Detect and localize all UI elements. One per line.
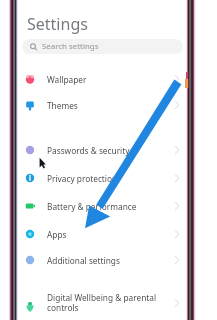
staticText: Additional settings bbox=[47, 255, 120, 266]
button[interactable]: Passwords & security bbox=[18, 140, 184, 160]
button[interactable]: Additional settings bbox=[18, 250, 184, 270]
button[interactable]: Battery & performance bbox=[18, 196, 184, 216]
staticText: Wallpaper bbox=[47, 74, 87, 85]
staticText: Digital Wellbeing & parental controls bbox=[47, 292, 157, 314]
staticText: Battery & performance bbox=[47, 201, 137, 212]
staticText: Privacy protection bbox=[47, 173, 118, 184]
staticText: Search settings bbox=[42, 41, 99, 52]
staticText: Themes bbox=[47, 100, 78, 111]
button[interactable]: Wallpaper bbox=[18, 69, 184, 89]
button[interactable]: Digital Wellbeing & parental controls bbox=[18, 292, 184, 314]
staticText: Apps bbox=[47, 229, 67, 240]
button[interactable]: Privacy protection bbox=[18, 168, 184, 188]
staticText: Passwords & security bbox=[47, 145, 130, 156]
button[interactable]: Themes bbox=[18, 95, 184, 115]
button[interactable]: Search settings bbox=[22, 39, 183, 54]
button[interactable]: Apps bbox=[18, 224, 184, 244]
staticText: Settings bbox=[27, 13, 88, 35]
